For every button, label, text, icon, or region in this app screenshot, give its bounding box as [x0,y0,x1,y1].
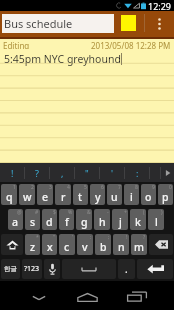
button[interactable]: % [59,209,74,230]
button[interactable]: * [25,234,40,255]
staticText: Bus schedule [4,16,73,31]
button[interactable]: $ [42,209,57,230]
staticText: s [30,215,36,229]
staticText: * [36,234,39,241]
staticText: l [155,215,158,229]
button[interactable]: ? [131,234,147,255]
button[interactable]: Space [62,259,116,279]
button[interactable]: 5:45pm NYC greyhound [0,49,174,163]
button[interactable]: , [50,163,74,182]
button[interactable]: @ [8,209,23,230]
staticText: ; [108,234,110,241]
button[interactable]: : [125,163,149,182]
staticText: o [145,190,152,204]
staticText: 12:29 [148,0,172,11]
staticText: , [61,167,64,179]
button[interactable]: & [76,209,92,230]
staticText: : [90,234,92,241]
button[interactable]: ( [130,209,146,230]
button[interactable]: More suggestions [161,163,174,182]
button[interactable]: . [118,259,135,279]
staticText: 6 [101,184,104,191]
button[interactable]: Shift [1,234,23,255]
button[interactable]: Backspace [149,234,173,255]
button[interactable]: : [77,234,93,255]
staticText: k [135,215,141,229]
staticText: z [30,240,36,254]
staticText: 2 [31,184,34,191]
staticText: 5:45pm NYC greyhound [4,52,121,66]
staticText: 0 [169,184,172,191]
button[interactable]: 8 [124,184,139,205]
button[interactable]: 0 [158,184,173,205]
staticText: # [35,209,39,216]
button[interactable]: 3 [37,184,53,205]
button[interactable]: " [42,234,57,255]
staticText: n [118,240,125,254]
button[interactable]: ?123 [22,259,42,279]
staticText: 4 [67,184,70,191]
staticText: p [162,190,169,204]
button[interactable]: 6 [90,184,105,205]
button[interactable]: 1 [1,184,17,205]
staticText: 한글 [4,265,17,273]
staticText: w [23,190,32,204]
button[interactable]: Voice input [44,259,60,279]
button[interactable]: ) [148,209,164,230]
button[interactable]: # [25,209,40,230]
staticText: % [68,209,73,216]
staticText: 3 [49,184,52,191]
staticText: ' [72,234,74,241]
staticText: b [100,240,107,254]
button[interactable]: 9 [141,184,156,205]
button[interactable]: " [75,163,99,182]
button[interactable]: ? [25,163,49,182]
button[interactable]: ! [0,163,24,182]
staticText: v [82,240,88,254]
button[interactable]: Bus schedule [2,14,114,33]
staticText: ? [143,234,146,241]
staticText: t [78,190,83,204]
staticText: f [65,215,69,229]
staticText: c [64,240,70,254]
staticText: q [6,190,13,204]
staticText: ?123 [24,264,40,274]
staticText: ! [11,167,14,179]
button[interactable]: Home [70,281,104,310]
staticText: " [85,167,89,179]
button[interactable]: 7 [107,184,122,205]
button[interactable]: 2 [19,184,35,205]
staticText: : [136,167,139,179]
staticText: h [99,215,106,229]
button[interactable]: - [94,209,110,230]
staticText: 1 [13,184,16,191]
other: Enter [147,264,164,274]
button[interactable]: Enter [137,259,173,279]
staticText: u [111,190,118,204]
button[interactable]: 4 [55,184,71,205]
staticText: 2013/05/08 12:28 PM [91,40,171,50]
staticText: 8 [135,184,138,191]
button[interactable]: ' [100,163,124,182]
other: Shift [6,240,19,250]
button[interactable]: 한글 [1,259,20,279]
staticText: a [12,215,19,229]
button[interactable]: Hide keyboard [22,281,56,310]
button[interactable]: + [112,209,128,230]
staticText: . [125,262,128,276]
other: Backspace [155,240,168,249]
button[interactable]: Recent apps [120,281,154,310]
staticText: g [81,215,88,229]
staticText: 9 [152,184,155,191]
button[interactable]: 5 [73,184,88,205]
button[interactable]: ' [59,234,75,255]
button[interactable]: More options [150,11,168,37]
staticText: 5 [84,184,87,191]
button[interactable]: ! [113,234,129,255]
staticText: i [130,190,133,204]
button[interactable]: ; [95,234,111,255]
staticText: - [107,209,109,216]
staticText: Editing [3,40,30,50]
